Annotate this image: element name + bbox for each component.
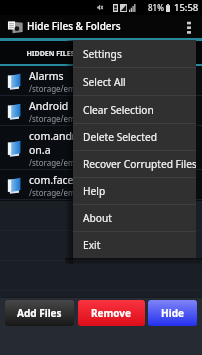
staticText: com.andr on.a	[29, 129, 77, 157]
staticText: Hide Files & Folders	[27, 19, 121, 33]
staticText: 81%	[148, 2, 164, 13]
staticText: Alarms	[29, 69, 64, 83]
button[interactable]: com.face	[0, 170, 202, 200]
button[interactable]: Alarms	[0, 66, 202, 96]
button[interactable]: More options	[180, 16, 198, 38]
staticText: /storage/em	[29, 83, 76, 94]
button[interactable]: Add Files	[5, 300, 74, 326]
button[interactable]: Help	[73, 178, 196, 204]
button[interactable]: Recover Corrupted Files	[73, 151, 196, 177]
staticText: /storage/em	[29, 187, 76, 198]
button[interactable]: Exit	[73, 232, 196, 258]
staticText: Select All	[83, 75, 126, 89]
staticText: /storage/em	[29, 113, 76, 124]
button[interactable]: Remove	[78, 300, 145, 326]
button[interactable]: Select All	[73, 68, 196, 95]
staticText: Hide	[161, 306, 184, 320]
staticText: HIDDEN FILES	[26, 49, 75, 59]
staticText: About	[83, 211, 112, 225]
staticText: Exit	[83, 238, 101, 252]
button[interactable]: HIDDEN FILES	[0, 41, 101, 66]
staticText: Android	[29, 99, 69, 113]
staticText: Clear Selection	[83, 103, 154, 117]
button[interactable]: Hide	[148, 300, 197, 326]
button[interactable]: Settings	[73, 40, 196, 67]
staticText: Recover Corrupted Files	[83, 157, 196, 171]
staticText: Add Files	[17, 306, 62, 320]
button[interactable]: com.andr on.a	[0, 126, 202, 170]
button[interactable]: Delete Selected	[73, 124, 196, 150]
staticText: Help	[83, 184, 106, 198]
staticText: /storage/em	[29, 157, 76, 168]
staticText: Remove	[91, 306, 132, 320]
staticText: Settings	[83, 47, 122, 61]
staticText: 15:58	[174, 1, 199, 14]
staticText: com.face	[29, 173, 74, 187]
staticText: Delete Selected	[83, 130, 157, 144]
button[interactable]: Clear Selection	[73, 96, 196, 123]
button[interactable]: Android	[0, 96, 202, 126]
button[interactable]: About	[73, 205, 196, 231]
